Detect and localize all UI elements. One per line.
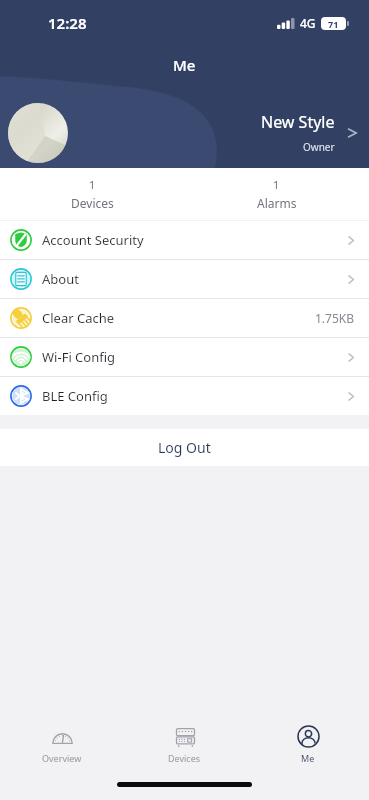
button[interactable]: Wi-Fi Config [0,338,369,376]
button[interactable]: Devices [123,714,246,774]
other: Open profile [343,124,361,142]
staticText: About [42,270,79,288]
staticText: 1 [273,177,280,192]
button[interactable]: 1 [184,168,369,220]
button[interactable]: BLE Config [0,377,369,415]
staticText: Account Security [42,231,144,249]
staticText: 71 [328,18,339,30]
staticText: Me [301,752,315,764]
button[interactable]: 1 [0,168,184,220]
button[interactable]: Account Security [0,221,369,259]
staticText: 4G [300,15,316,31]
button[interactable]: Overview [0,714,123,774]
staticText: BLE Config [42,387,108,405]
staticText: 1 [89,177,96,192]
staticText: Overview [42,752,82,764]
staticText: Devices [168,752,201,764]
button[interactable]: Me [246,714,369,774]
staticText: Devices [71,195,114,211]
button[interactable]: About [0,260,369,298]
staticText: Clear Cache [42,309,115,327]
staticText: Log Out [158,438,211,457]
staticText: Wi-Fi Config [42,348,116,366]
staticText: New Style [261,111,335,133]
button[interactable]: New Style [0,97,369,168]
button[interactable]: Log Out [0,429,369,466]
button[interactable]: Clear Cache [0,299,369,337]
staticText: Alarms [257,195,297,211]
staticText: Me [173,55,196,75]
staticText: Owner [303,140,335,154]
staticText: 1.75KB [315,310,355,326]
staticText: 12:28 [48,13,87,33]
